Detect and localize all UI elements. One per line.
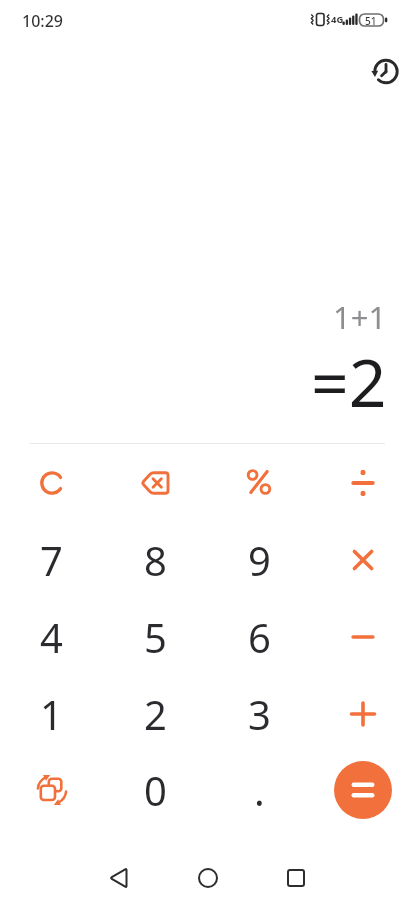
- button[interactable]: 9: [207, 521, 311, 598]
- button[interactable]: [207, 444, 311, 521]
- button[interactable]: 1: [0, 675, 103, 752]
- button[interactable]: 5: [103, 598, 207, 675]
- staticText: 1: [40, 687, 63, 741]
- staticText: 4: [40, 610, 63, 664]
- button[interactable]: [274, 856, 318, 900]
- button[interactable]: 6: [207, 598, 311, 675]
- button[interactable]: [334, 761, 392, 819]
- staticText: 3: [248, 687, 271, 741]
- staticText: 8: [144, 533, 167, 587]
- button[interactable]: [311, 598, 415, 675]
- staticText: 9: [248, 533, 271, 587]
- staticText: 51: [365, 14, 377, 28]
- button[interactable]: [0, 752, 103, 827]
- staticText: =2: [311, 336, 387, 426]
- button[interactable]: 3: [207, 675, 311, 752]
- button[interactable]: [311, 675, 415, 752]
- staticText: 10:29: [22, 10, 63, 32]
- button[interactable]: 0: [103, 752, 207, 827]
- button[interactable]: 4: [0, 598, 103, 675]
- staticText: 4G: [331, 13, 344, 26]
- button[interactable]: [311, 521, 415, 598]
- staticText: .: [254, 763, 265, 817]
- button[interactable]: [372, 58, 399, 85]
- button[interactable]: [103, 444, 207, 521]
- staticText: 6: [248, 610, 271, 664]
- staticText: 2: [144, 687, 167, 741]
- button[interactable]: [98, 856, 142, 900]
- staticText: 1+1: [333, 296, 387, 338]
- staticText: 5: [144, 610, 167, 664]
- button[interactable]: [186, 856, 230, 900]
- button[interactable]: 8: [103, 521, 207, 598]
- staticText: 0: [144, 763, 167, 817]
- button[interactable]: .: [207, 752, 311, 827]
- button[interactable]: 2: [103, 675, 207, 752]
- button[interactable]: [311, 444, 415, 521]
- button[interactable]: [0, 444, 103, 521]
- button[interactable]: 7: [0, 521, 103, 598]
- staticText: 7: [40, 533, 63, 587]
